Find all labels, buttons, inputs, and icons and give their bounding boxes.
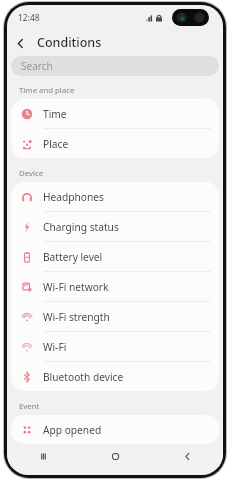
staticText: Wi-Fi [43,340,67,354]
staticText: Headphones [43,190,104,204]
staticText: Place [43,137,69,151]
button[interactable]: Battery level [11,242,219,271]
staticText: Charging status [43,220,119,234]
button[interactable]: Back [7,30,33,56]
button[interactable]: Wi-Fi strength [11,302,219,331]
staticText: Search [21,59,53,73]
button[interactable]: Wi-Fi [11,332,219,361]
button[interactable]: Headphones [11,182,219,211]
staticText: 12:48 [18,12,40,24]
staticText: Device [19,168,44,179]
staticText: Wi-Fi strength [43,310,110,324]
staticText: Event [19,401,40,412]
staticText: Time [43,107,67,121]
button[interactable]: Home [79,445,151,467]
button[interactable]: Place [11,129,219,158]
button[interactable]: Wi-Fi network [11,272,219,301]
staticText: Conditions [37,34,102,51]
staticText: Battery level [43,250,103,264]
button[interactable]: Recent apps [7,445,79,467]
button[interactable]: Back [151,445,223,467]
button[interactable]: Charging status [11,212,219,241]
staticText: App opened [43,423,102,437]
staticText: Time and place [19,85,75,96]
button[interactable]: Search [11,56,219,76]
staticText: Bluetooth device [43,370,124,384]
button[interactable]: Bluetooth device [11,362,219,391]
button[interactable]: App opened [11,415,219,444]
button[interactable]: Time [11,99,219,128]
staticText: Wi-Fi network [43,280,109,294]
